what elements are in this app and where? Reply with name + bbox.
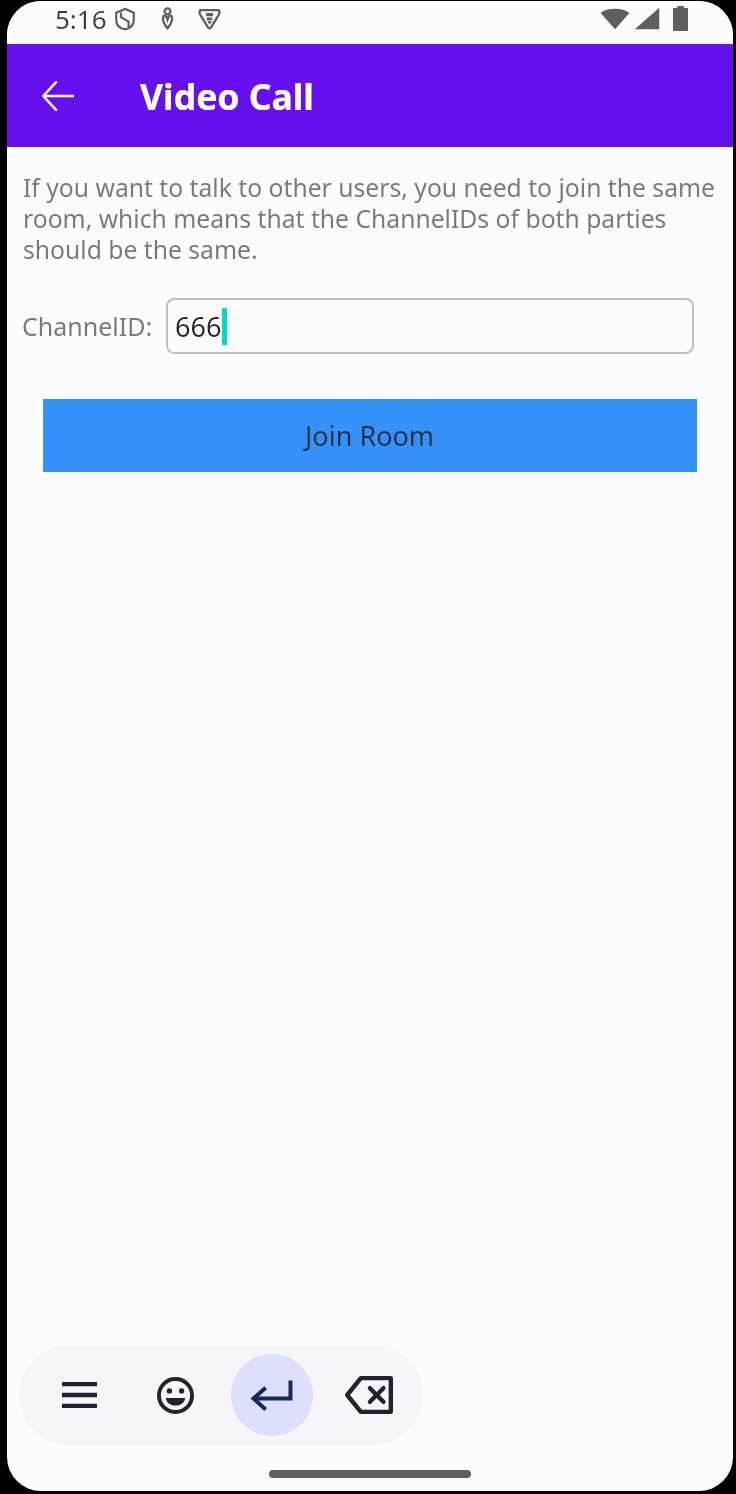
staticText: 666: [175, 308, 222, 345]
button[interactable]: Back: [34, 72, 82, 120]
staticText: If you want to talk to other users, you …: [23, 171, 719, 267]
button[interactable]: Enter: [231, 1354, 313, 1436]
staticText: ChannelID:: [22, 309, 153, 343]
button[interactable]: 666: [166, 298, 694, 354]
button[interactable]: Menu: [48, 1364, 110, 1426]
button[interactable]: Emoji: [144, 1364, 206, 1426]
button[interactable]: Join Room: [43, 399, 697, 472]
staticText: 5:16: [55, 1, 107, 36]
staticText: Join Room: [305, 417, 435, 454]
staticText: Video Call: [140, 72, 314, 120]
button[interactable]: Backspace: [336, 1362, 402, 1428]
